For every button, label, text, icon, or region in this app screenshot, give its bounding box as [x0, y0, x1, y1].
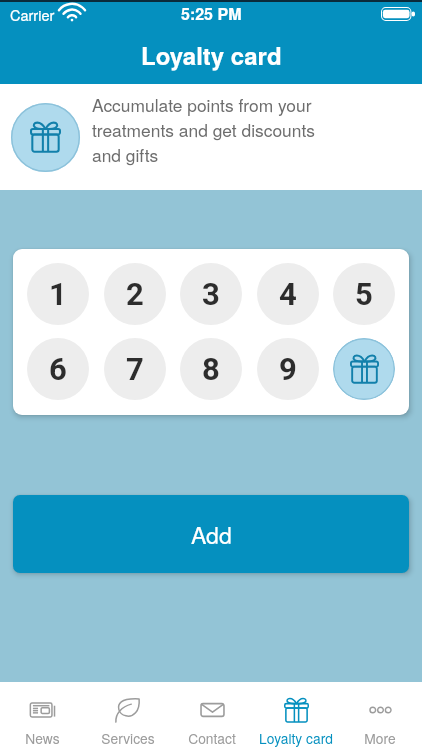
- button[interactable]: 8: [180, 338, 242, 400]
- staticText: Loyalty card: [141, 38, 282, 72]
- button[interactable]: Reward gift: [333, 338, 395, 400]
- staticText: 5:25 PM: [181, 2, 242, 25]
- staticText: Services: [101, 728, 155, 748]
- button[interactable]: 1: [27, 263, 89, 325]
- button[interactable]: Contact: [170, 684, 254, 748]
- staticText: Contact: [188, 728, 236, 748]
- button[interactable]: News: [0, 684, 85, 748]
- staticText: 3: [202, 276, 220, 312]
- staticText: 9: [279, 351, 297, 387]
- staticText: 4: [279, 276, 297, 312]
- staticText: 5: [355, 276, 373, 312]
- staticText: Carrier: [10, 4, 55, 25]
- staticText: 7: [126, 351, 144, 387]
- button[interactable]: Add: [13, 495, 409, 573]
- button[interactable]: Loyalty card: [254, 684, 338, 748]
- staticText: 1: [49, 276, 67, 312]
- staticText: News: [25, 728, 60, 748]
- staticText: Loyalty card: [259, 728, 333, 748]
- button[interactable]: More: [338, 684, 422, 748]
- staticText: More: [364, 728, 396, 748]
- staticText: 2: [126, 276, 144, 312]
- button[interactable]: 5: [333, 263, 395, 325]
- staticText: Add: [191, 518, 232, 551]
- staticText: 6: [49, 351, 67, 387]
- button[interactable]: 6: [27, 338, 89, 400]
- button[interactable]: 9: [257, 338, 319, 400]
- button[interactable]: 4: [257, 263, 319, 325]
- staticText: 8: [202, 351, 220, 387]
- staticText: Accumulate points from your treatments a…: [92, 92, 315, 167]
- button[interactable]: Services: [85, 684, 170, 748]
- button[interactable]: 2: [104, 263, 166, 325]
- button[interactable]: 3: [180, 263, 242, 325]
- button[interactable]: 7: [104, 338, 166, 400]
